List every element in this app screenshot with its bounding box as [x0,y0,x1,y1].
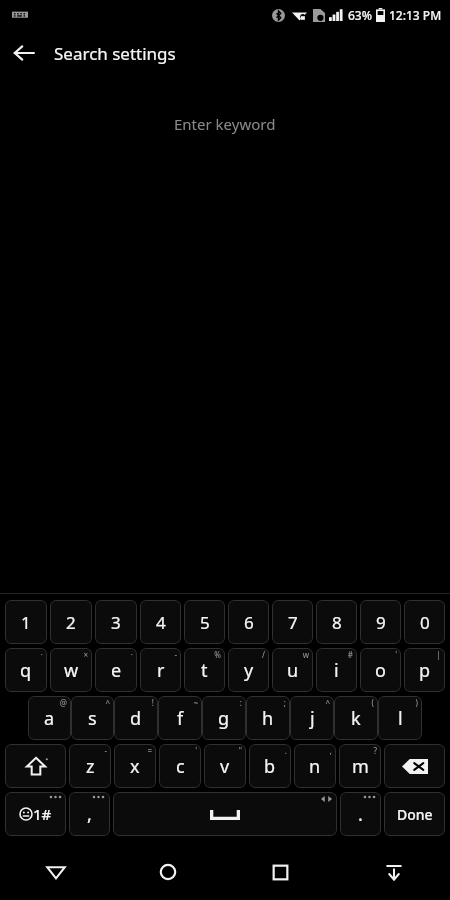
staticText: - [174,649,177,660]
button[interactable]: . [249,744,291,788]
button[interactable]: 5 [184,600,225,644]
button[interactable]: Recents [224,844,337,900]
staticText: k [351,706,361,731]
staticText: 0 [420,611,430,634]
button[interactable]: - [140,648,181,692]
staticText: Search settings [54,42,176,65]
button[interactable]: Done [384,792,445,836]
staticText: Enter keyword [174,114,276,134]
button[interactable]: w [272,648,313,692]
button[interactable]: 8 [316,600,357,644]
staticText: ( [371,697,374,708]
staticText: 12:13 PM [389,7,442,23]
staticText: l [398,706,403,731]
button[interactable]: Shift [5,744,66,788]
button[interactable]: 2 [50,600,92,644]
button[interactable]: , [294,744,336,788]
button[interactable]: - [69,744,111,788]
button[interactable]: Home [112,844,224,900]
button[interactable]: 3 [95,600,137,644]
staticText: ? [373,745,377,756]
button[interactable]: 9 [360,600,401,644]
staticText: 8 [332,611,342,634]
staticText: ; [283,697,286,708]
staticText: 2 [66,611,76,634]
button[interactable]: · [5,648,47,692]
button[interactable]: ' [360,648,401,692]
staticText: m [352,754,369,779]
staticText: n [309,754,321,779]
staticText: 4 [156,611,166,634]
staticText: s [88,706,97,731]
staticText: - [104,745,107,756]
button[interactable]: × [50,648,92,692]
button[interactable]: Symbols and emoji [5,792,66,836]
staticText: 1# [33,804,52,824]
staticText: ' [195,745,197,756]
staticText: Done [397,805,433,824]
staticText: w [302,649,309,660]
button[interactable]: | [404,648,445,692]
button[interactable]: # [316,648,357,692]
button[interactable]: ? [339,744,381,788]
button[interactable]: , [69,792,110,836]
button[interactable]: ~ [158,696,202,740]
staticText: ^ [325,697,330,708]
staticText: ! [151,697,154,708]
button[interactable]: = [114,744,156,788]
staticText: a [44,706,55,731]
button[interactable]: ( [334,696,378,740]
button[interactable]: / [228,648,269,692]
staticText: @ [59,697,67,708]
button[interactable]: Space [113,792,337,836]
button[interactable]: Back [0,30,48,76]
button[interactable]: : [202,696,246,740]
staticText: j [310,706,315,731]
staticText: 63% [348,7,372,23]
button[interactable]: ! [114,696,158,740]
button[interactable]: ; [246,696,290,740]
staticText: # [347,649,353,660]
button[interactable]: ) [378,696,422,740]
staticText: " [238,745,242,756]
button[interactable]: 0 [404,600,445,644]
staticText: f [177,706,184,731]
staticText: · [130,649,133,660]
staticText: z [86,754,95,779]
button[interactable]: ' [159,744,201,788]
button[interactable]: Backspace [384,744,445,788]
staticText: 9 [376,611,386,634]
staticText: × [83,649,88,660]
staticText: v [220,754,230,779]
button[interactable]: @ [28,696,71,740]
button[interactable]: ^ [290,696,334,740]
staticText: . [284,745,287,756]
button[interactable]: Back [0,844,112,900]
staticText: u [287,658,299,683]
staticText: , [329,745,332,756]
button[interactable]: % [184,648,225,692]
staticText: q [20,658,32,683]
button[interactable]: ^ [71,696,114,740]
staticText: = [147,745,152,756]
button[interactable]: " [204,744,246,788]
button[interactable]: · [95,648,137,692]
staticText: w [64,658,79,683]
staticText: h [262,706,274,731]
button[interactable]: . [340,792,381,836]
button[interactable]: 1 [5,600,47,644]
staticText: | [436,649,441,660]
staticText: i [334,658,339,683]
staticText: . [358,802,363,827]
staticText: ^ [105,697,110,708]
staticText: o [375,658,386,683]
button[interactable]: 6 [228,600,269,644]
staticText: 6 [244,611,254,634]
button[interactable]: 4 [140,600,181,644]
button[interactable]: Hide keyboard [337,844,450,900]
staticText: g [218,706,230,731]
button[interactable]: 7 [272,600,313,644]
staticText: t [201,658,208,683]
staticText: 7 [288,611,298,634]
staticText: 1 [21,611,31,634]
